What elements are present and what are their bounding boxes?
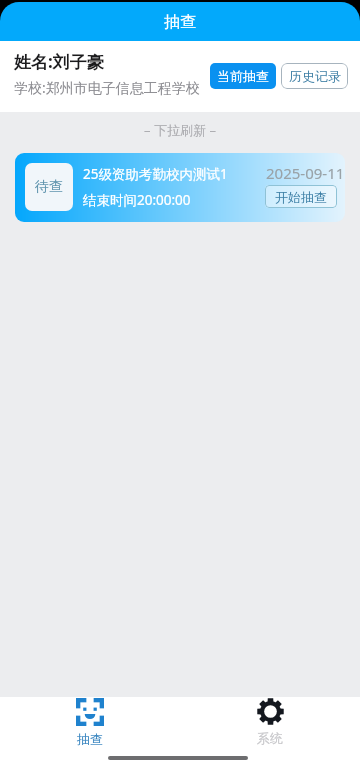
button[interactable]: 开始抽查 xyxy=(265,185,337,208)
button[interactable]: 待查 xyxy=(15,153,345,222)
staticText: 25级资助考勤校内测试1 xyxy=(83,165,228,183)
other: 系统 xyxy=(257,698,284,725)
staticText: 历史记录 xyxy=(289,68,341,84)
staticText: 2025-09-11 xyxy=(266,163,345,183)
staticText: 系统 xyxy=(257,730,283,746)
staticText: 姓名:刘子豪 xyxy=(14,50,104,73)
other: 抽查 xyxy=(76,698,104,726)
staticText: 结束时间20:00:00 xyxy=(83,191,191,209)
staticText: 学校:郑州市电子信息工程学校 xyxy=(14,78,200,97)
button[interactable]: 历史记录 xyxy=(281,63,348,89)
staticText: 抽查 xyxy=(164,12,196,32)
staticText: 当前抽查 xyxy=(217,68,269,84)
button[interactable]: 当前抽查 xyxy=(210,63,276,89)
staticText: 待查 xyxy=(35,178,63,196)
button[interactable]: 系统 xyxy=(180,697,360,747)
staticText: – 下拉刷新 – xyxy=(0,121,360,139)
staticText: 开始抽查 xyxy=(275,189,327,205)
button[interactable]: 抽查 xyxy=(0,697,180,747)
staticText: 抽查 xyxy=(77,731,103,747)
